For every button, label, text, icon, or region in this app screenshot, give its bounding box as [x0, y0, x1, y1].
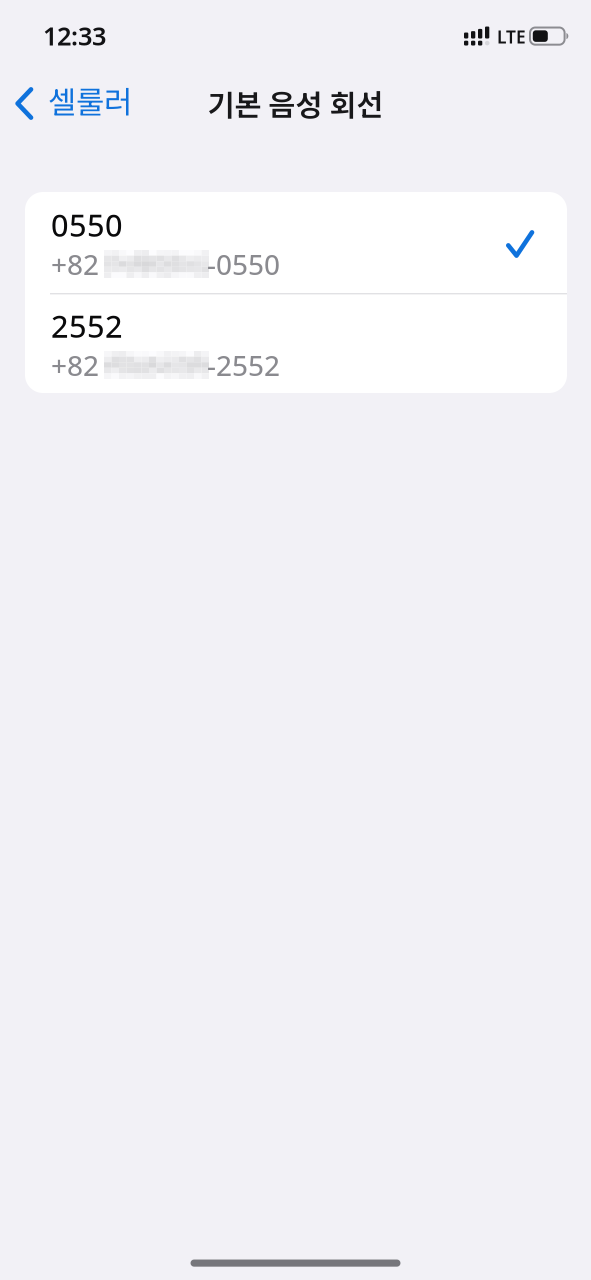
- button[interactable]: 2552: [25, 293, 567, 393]
- staticText: -2552: [207, 346, 280, 384]
- staticText: 셀룰러: [48, 78, 132, 122]
- staticText: +82: [51, 346, 99, 384]
- staticText: 12:33: [43, 18, 106, 53]
- staticText: -0550: [207, 245, 280, 283]
- button[interactable]: 셀룰러: [0, 76, 140, 134]
- staticText: 2552: [51, 305, 123, 347]
- staticText: 기본 음성 회선: [207, 82, 383, 124]
- staticText: 0550: [51, 204, 123, 246]
- staticText: +82: [51, 245, 99, 283]
- button[interactable]: 0550: [25, 192, 567, 292]
- staticText: LTE: [497, 25, 526, 49]
